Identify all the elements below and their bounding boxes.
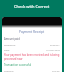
staticText: Reference: [4, 43, 16, 46]
staticText: $24.00: [52, 69, 60, 72]
staticText: Amount paid: [4, 37, 20, 41]
staticText: 12 Mar 2024: [46, 48, 60, 51]
staticText: Subtotal: [4, 69, 14, 72]
staticText: Date: [4, 48, 10, 51]
staticText: Payment Receipt: [19, 30, 45, 34]
button[interactable]: Check with Correct: [0, 4, 64, 8]
staticText: 8726341: [50, 43, 60, 46]
staticText: Transaction successful: [4, 63, 32, 67]
staticText: Your payment has been received and is be…: [4, 53, 60, 61]
staticText: Check with Correct: [14, 4, 50, 8]
